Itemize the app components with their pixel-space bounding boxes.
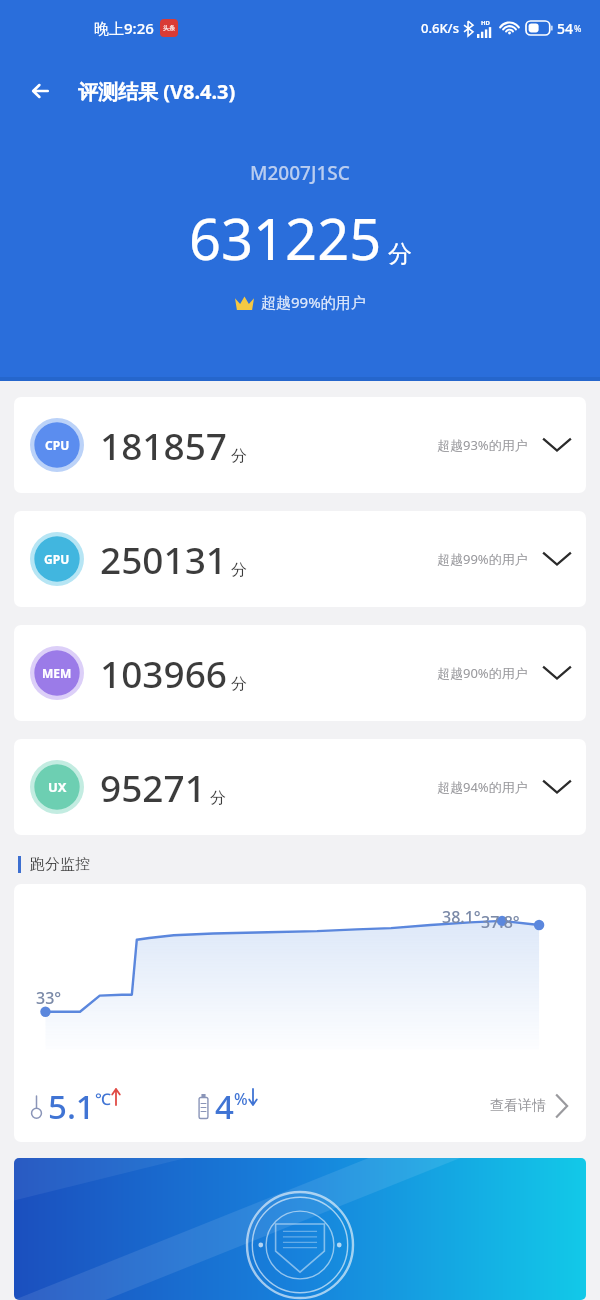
staticText: 0.6K/s <box>421 19 459 37</box>
staticText: 54 <box>557 19 574 38</box>
staticText: 分 <box>231 560 247 580</box>
staticText: 超越99%的用户 <box>261 292 366 312</box>
staticText: UX <box>48 778 67 796</box>
button[interactable]: CPU <box>14 397 586 493</box>
button[interactable]: Back <box>18 67 66 115</box>
staticText: 分 <box>388 239 412 269</box>
staticText: 5.1 <box>48 1084 95 1129</box>
staticText: 分 <box>231 674 247 694</box>
staticText: ℃ <box>95 1088 111 1110</box>
staticText: 超越99%的用户 <box>437 550 528 568</box>
button[interactable] <box>14 1158 586 1300</box>
staticText: 631225 <box>189 200 382 276</box>
staticText: 跑分监控 <box>30 855 90 874</box>
staticText: CPU <box>45 437 70 453</box>
staticText: 超越90%的用户 <box>437 664 528 682</box>
staticText: 分 <box>231 446 247 466</box>
staticText: 103966 <box>100 648 227 698</box>
staticText: 33° <box>36 987 62 1009</box>
button[interactable]: MEM <box>14 625 586 721</box>
staticText: 4 <box>215 1084 234 1129</box>
staticText: 查看详情 <box>490 1097 546 1115</box>
staticText: M2007J1SC <box>250 160 350 186</box>
staticText: 181857 <box>100 420 227 470</box>
staticText: 评测结果 (V8.4.3) <box>78 78 236 105</box>
staticText: 超越94%的用户 <box>437 778 528 796</box>
staticText: % <box>574 22 582 34</box>
button[interactable]: UX <box>14 739 586 835</box>
staticText: 超越93%的用户 <box>437 436 528 454</box>
button[interactable]: 查看详情 <box>490 1092 570 1120</box>
staticText: 晚上9:26 <box>94 18 154 38</box>
staticText: 37.8° <box>481 911 520 933</box>
staticText: 头条 <box>163 24 175 32</box>
staticText: GPU <box>44 551 70 567</box>
staticText: MEM <box>42 665 72 681</box>
staticText: 250131 <box>100 534 227 584</box>
button[interactable]: GPU <box>14 511 586 607</box>
staticText: 38.1° <box>442 906 481 928</box>
staticText: 分 <box>210 788 226 808</box>
staticText: % <box>234 1088 248 1110</box>
staticText: HD <box>481 19 490 27</box>
staticText: 95271 <box>100 762 206 812</box>
